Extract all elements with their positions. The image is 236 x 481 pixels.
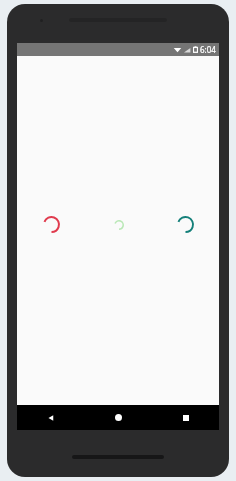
staticText: 6:04 [200,44,216,55]
button[interactable]: Recent apps [152,405,219,430]
button[interactable]: Home [85,405,152,430]
button[interactable]: Back [17,405,85,430]
